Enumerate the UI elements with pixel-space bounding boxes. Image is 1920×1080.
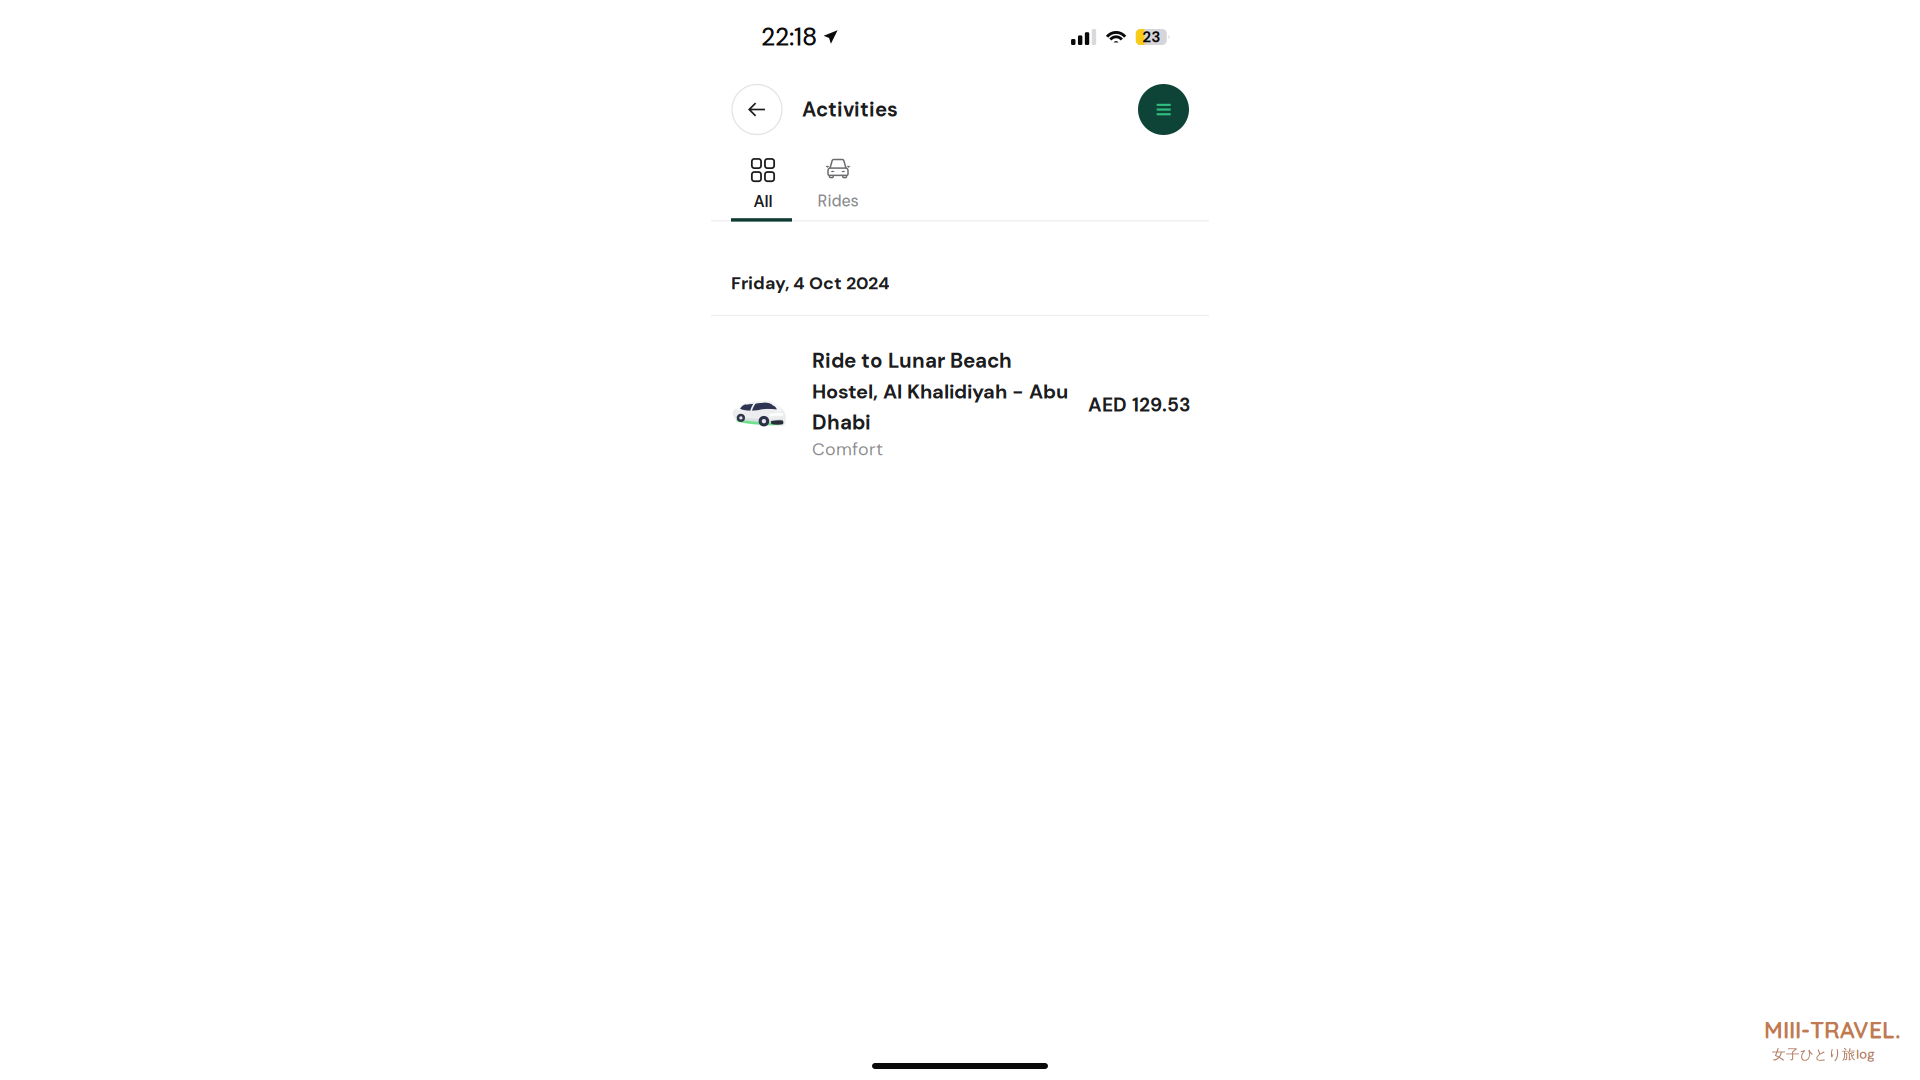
staticText: All [753,191,772,212]
staticText: Friday, 4 Oct 2024 [731,272,890,295]
button[interactable]: Back [732,84,782,134]
button[interactable]: Menu [1138,84,1189,135]
staticText: Rides [817,191,858,211]
staticText: AED 129.53 [1088,392,1191,417]
staticText: Hostel, Al Khalidiyah - Abu [812,379,1068,405]
staticText: Activities [802,96,898,123]
staticText: Ride to Lunar Beach [812,347,1012,374]
staticText: Comfort [812,437,883,461]
staticText: 22:18 [761,21,817,53]
staticText: 女子ひとり旅log [1772,1045,1875,1063]
button[interactable]: Rides [795,150,881,220]
staticText: Dhabi [812,409,871,436]
staticText: MIII-TRAVEL. [1764,1016,1901,1044]
button[interactable]: All [731,150,795,220]
button[interactable]: Ride to Lunar Beach [700,316,1220,461]
staticText: 23 [1142,27,1160,47]
